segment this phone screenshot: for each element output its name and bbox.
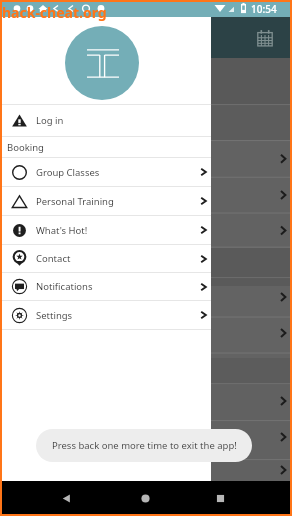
- button[interactable]: What's Hot!: [0, 216, 211, 244]
- staticText: Personal Training: [36, 195, 114, 208]
- button[interactable]: Log in: [0, 105, 211, 136]
- staticText: Settings: [36, 309, 73, 322]
- button[interactable]: Contact: [0, 245, 211, 272]
- button[interactable]: Recents: [212, 490, 229, 507]
- button[interactable]: Calendar: [256, 29, 274, 47]
- staticText: Press back one more time to exit the app…: [52, 439, 237, 452]
- button[interactable]: Personal Training: [0, 187, 211, 215]
- button[interactable]: Settings: [0, 301, 211, 329]
- staticText: 10:54: [251, 2, 277, 16]
- staticText: Group Classes: [36, 166, 100, 179]
- staticText: Booking: [7, 141, 44, 154]
- button[interactable]: Press back one more time to exit the app…: [36, 429, 252, 462]
- button[interactable]: Profile: [65, 26, 139, 100]
- staticText: Log in: [36, 114, 64, 127]
- button[interactable]: Group Classes: [0, 158, 211, 186]
- button[interactable]: Back: [58, 490, 75, 507]
- staticText: What's Hot!: [36, 224, 88, 237]
- staticText: Contact: [36, 252, 71, 265]
- staticText: hack-cheat.org: [2, 3, 107, 22]
- staticText: Notifications: [36, 280, 93, 293]
- button[interactable]: Notifications: [0, 273, 211, 300]
- button[interactable]: Home: [137, 490, 154, 507]
